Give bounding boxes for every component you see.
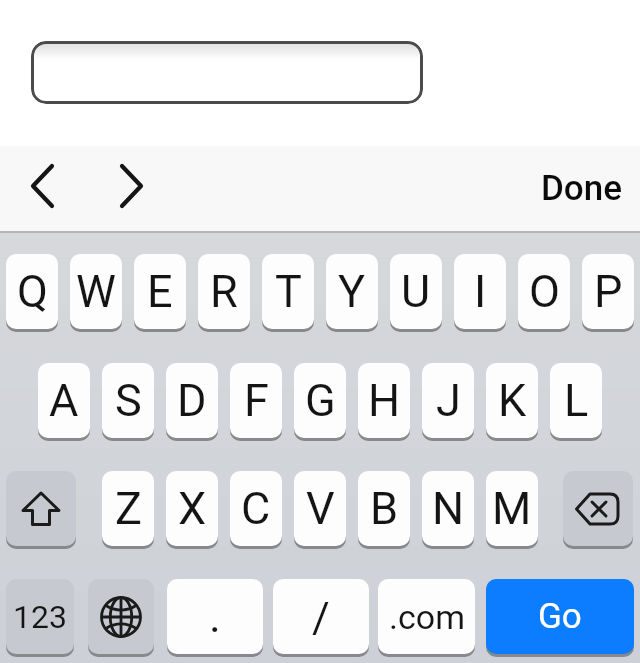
staticText: 123	[13, 598, 67, 636]
button[interactable]	[6, 471, 76, 546]
staticText: Q	[17, 265, 48, 318]
staticText: P	[594, 265, 623, 318]
staticText: E	[147, 265, 173, 318]
button[interactable]: P	[582, 254, 634, 329]
button[interactable]: E	[134, 254, 186, 329]
staticText: W	[76, 265, 116, 318]
button[interactable]: .com	[378, 579, 475, 654]
staticText: N	[432, 482, 465, 535]
button[interactable]: Q	[6, 254, 58, 329]
staticText: U	[401, 265, 431, 318]
staticText: Done	[541, 168, 623, 209]
button[interactable]: V	[294, 471, 346, 546]
button[interactable]: J	[422, 363, 474, 438]
button[interactable]: Y	[326, 254, 378, 329]
staticText: S	[115, 374, 142, 427]
staticText: G	[305, 374, 336, 427]
button[interactable]: 123	[6, 579, 74, 654]
staticText: X	[178, 482, 207, 535]
staticText: D	[177, 374, 207, 427]
button[interactable]: M	[486, 471, 538, 546]
button[interactable]: H	[358, 363, 410, 438]
button[interactable]: G	[294, 363, 346, 438]
staticText: Z	[115, 482, 142, 535]
staticText: .	[209, 590, 221, 643]
button[interactable]: .	[167, 579, 263, 654]
button[interactable]: R	[198, 254, 250, 329]
button[interactable]: S	[102, 363, 154, 438]
button[interactable]: O	[518, 254, 570, 329]
button[interactable]	[18, 160, 66, 212]
staticText: A	[49, 374, 79, 427]
staticText: K	[498, 374, 527, 427]
staticText: .com	[389, 597, 465, 637]
staticText: Go	[538, 596, 582, 637]
staticText: L	[564, 374, 589, 427]
button[interactable]: W	[70, 254, 122, 329]
button[interactable]: K	[486, 363, 538, 438]
staticText: J	[436, 374, 461, 427]
staticText: M	[492, 482, 532, 535]
staticText: R	[210, 265, 238, 318]
staticText: C	[241, 482, 271, 535]
button[interactable]: C	[230, 471, 282, 546]
staticText: H	[368, 374, 401, 427]
staticText: O	[529, 265, 560, 318]
button[interactable]: /	[273, 579, 369, 654]
button[interactable]	[31, 41, 423, 104]
staticText: B	[370, 482, 399, 535]
button[interactable]: F	[230, 363, 282, 438]
button[interactable]: D	[166, 363, 218, 438]
button[interactable]: T	[262, 254, 314, 329]
button[interactable]: A	[38, 363, 90, 438]
button[interactable]	[563, 471, 633, 546]
button[interactable]: N	[422, 471, 474, 546]
staticText: Y	[338, 265, 366, 318]
button[interactable]: I	[454, 254, 506, 329]
button[interactable]: B	[358, 471, 410, 546]
staticText: /	[312, 592, 330, 642]
staticText: I	[474, 265, 487, 318]
button[interactable]	[88, 579, 154, 654]
button[interactable]	[108, 160, 156, 212]
staticText: V	[306, 482, 335, 535]
button[interactable]: U	[390, 254, 442, 329]
staticText: T	[275, 265, 302, 318]
button[interactable]: Z	[102, 471, 154, 546]
button[interactable]: X	[166, 471, 218, 546]
staticText: F	[244, 374, 269, 427]
button[interactable]: L	[550, 363, 602, 438]
button[interactable]: Go	[486, 579, 634, 654]
button[interactable]: Done	[541, 168, 623, 209]
